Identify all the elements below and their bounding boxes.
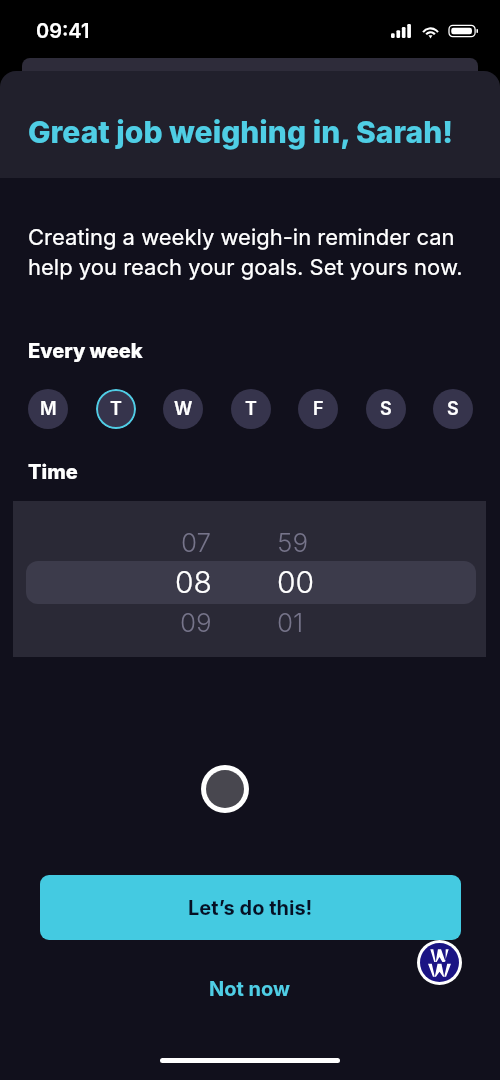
staticText: 07 (181, 527, 212, 558)
staticText: M (40, 398, 57, 420)
staticText: 09:41 (36, 19, 90, 43)
staticText: T (110, 398, 122, 420)
staticText: F (313, 398, 324, 420)
button[interactable]: S (366, 389, 406, 429)
staticText: 01 (277, 607, 304, 638)
staticText: 08 (175, 564, 212, 600)
staticText: S (380, 398, 392, 420)
staticText: T (245, 398, 257, 420)
button[interactable]: F (298, 389, 338, 429)
staticText: Not now (209, 977, 291, 1001)
button[interactable]: M (28, 389, 68, 429)
button[interactable]: S (433, 389, 473, 429)
staticText: W (174, 398, 193, 420)
button[interactable]: Let’s do this! (40, 875, 461, 940)
button[interactable]: WW logo (420, 943, 459, 982)
button[interactable]: T (96, 389, 136, 429)
button[interactable]: Not now (0, 966, 500, 1012)
staticText: S (447, 398, 459, 420)
staticText: Every week (28, 339, 143, 363)
staticText: 00 (277, 564, 315, 600)
button[interactable]: W (163, 389, 203, 429)
staticText: Great job weighing in, Sarah! (28, 114, 453, 150)
staticText: Let’s do this! (188, 896, 313, 920)
staticText: 59 (277, 527, 309, 558)
staticText: Creating a weekly weigh-in reminder can … (28, 224, 480, 280)
staticText: 09 (180, 607, 212, 638)
button[interactable]: T (231, 389, 271, 429)
staticText: Time (28, 460, 78, 484)
